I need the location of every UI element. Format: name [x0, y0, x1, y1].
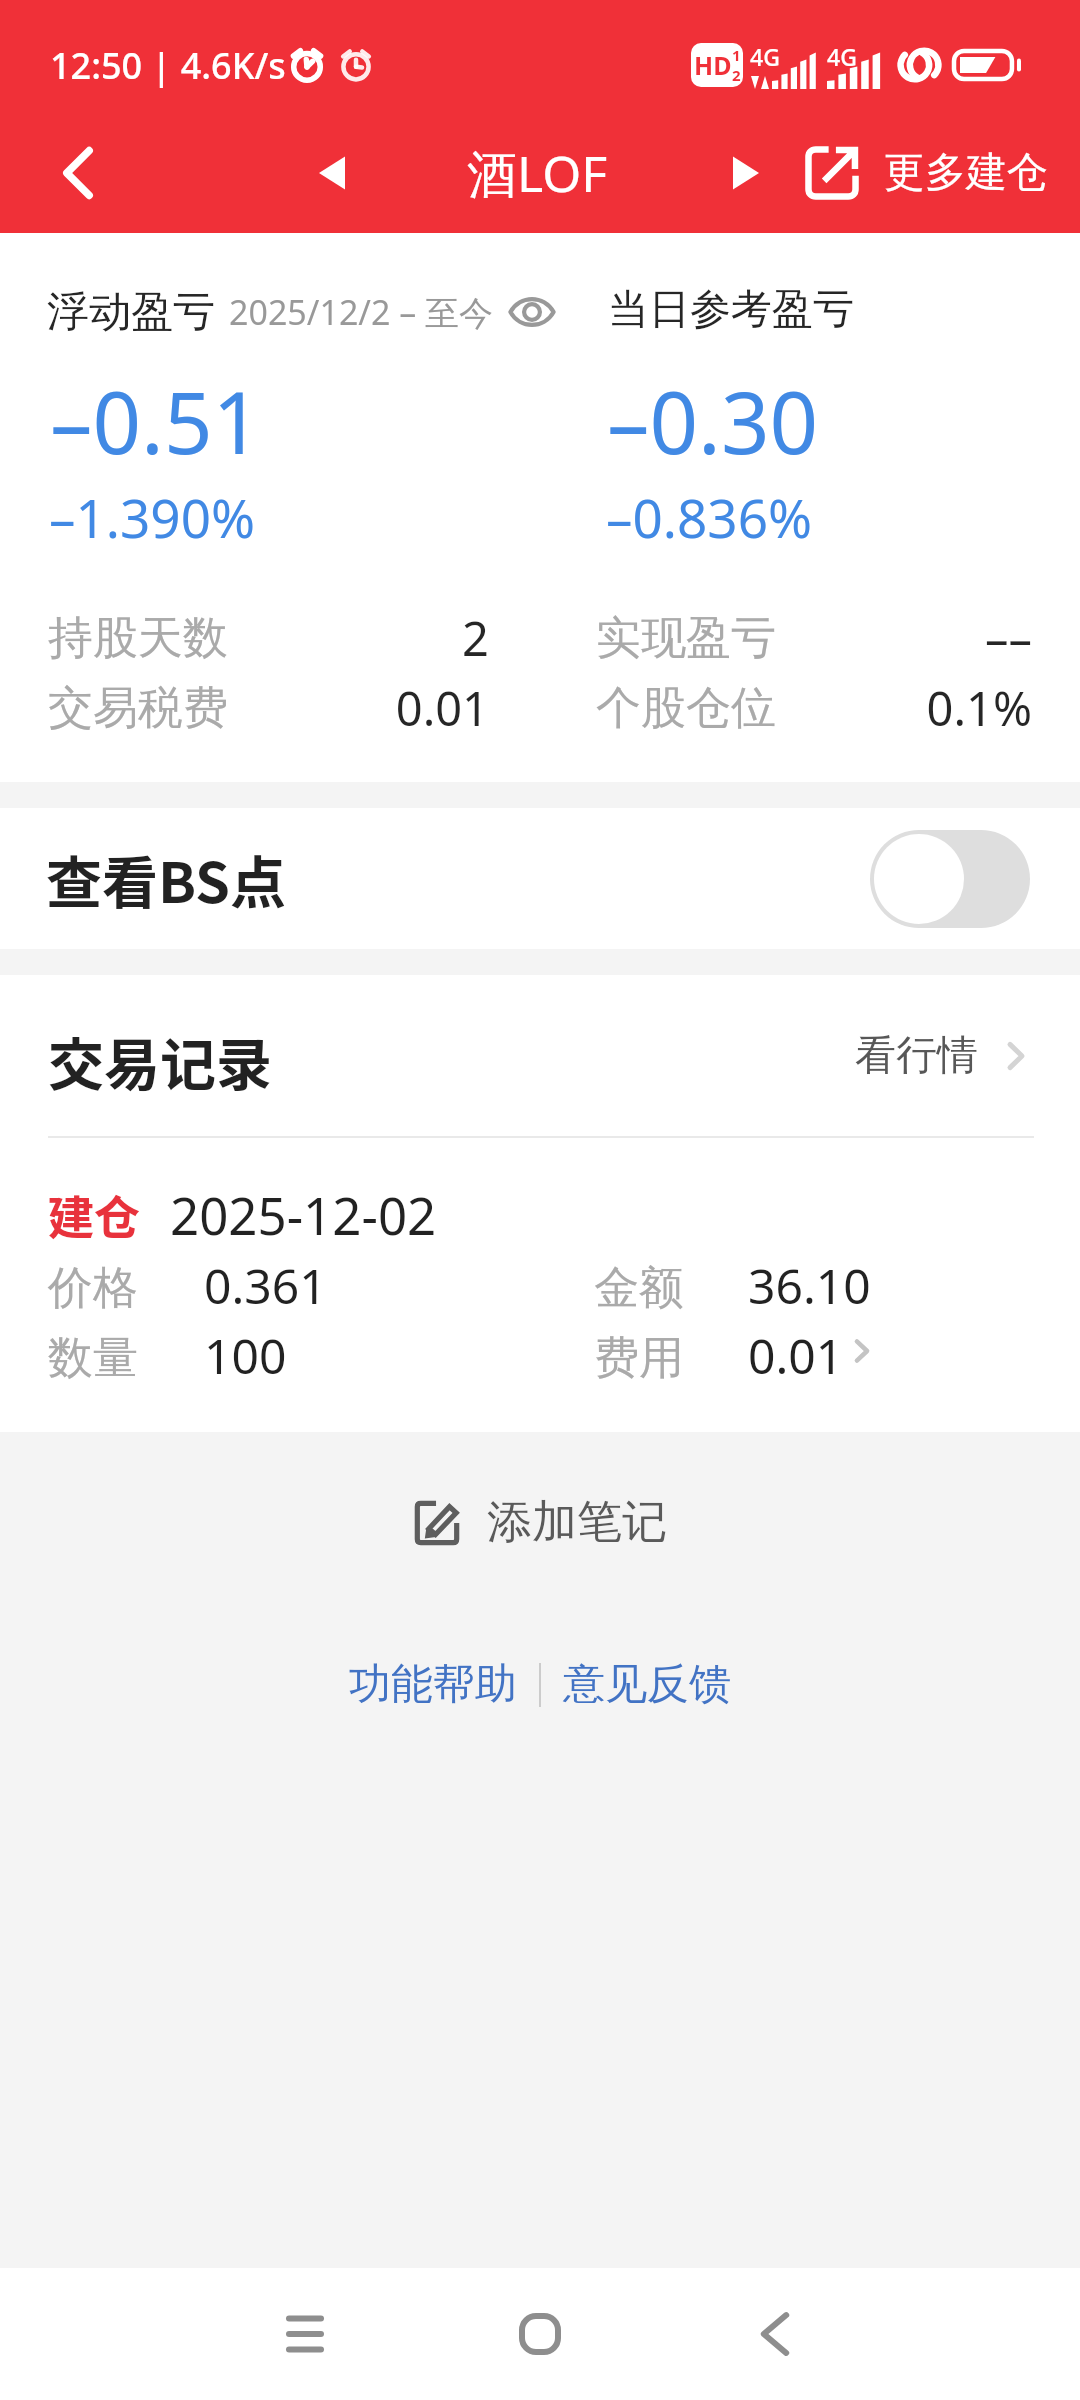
button[interactable]: Back — [720, 2279, 830, 2389]
staticText: 0.01 — [748, 1323, 844, 1388]
staticText: 100 — [204, 1323, 287, 1388]
staticText: –1.390% — [49, 481, 256, 553]
staticText: 2025-12-02 — [170, 1180, 437, 1249]
button[interactable]: 查看BS点 — [0, 808, 1080, 949]
staticText: 费用 — [594, 1330, 684, 1387]
staticText: HD — [694, 48, 732, 82]
staticText: 0.01 — [250, 676, 489, 740]
staticText: 1 — [732, 45, 741, 65]
staticText: 0.361 — [204, 1253, 327, 1318]
staticText: –0.836% — [606, 481, 813, 553]
staticText: 实现盈亏 — [596, 610, 776, 667]
staticText: 持股天数 — [48, 610, 228, 667]
staticText: 更多建仓 — [884, 147, 1048, 199]
button[interactable]: 看行情 — [855, 1022, 1036, 1090]
staticText: 意见反馈 — [563, 1658, 731, 1711]
staticText: 2025/12/2 – 至今 — [229, 289, 494, 335]
staticText: 数量 — [48, 1330, 138, 1387]
staticText: –0.30 — [607, 363, 819, 479]
staticText: 金额 — [594, 1260, 684, 1317]
button[interactable]: Recent apps — [250, 2279, 360, 2389]
staticText: 交易记录 — [48, 1020, 272, 1101]
staticText: 36.10 — [748, 1253, 871, 1318]
staticText: 个股仓位 — [596, 680, 776, 737]
button[interactable]: Toggle visibility — [504, 284, 560, 340]
button[interactable]: 功能帮助 — [327, 1646, 539, 1723]
staticText: 添加笔记 — [487, 1494, 667, 1551]
button[interactable]: 意见反馈 — [541, 1646, 753, 1723]
staticText: 2 — [250, 606, 489, 670]
staticText: –0.51 — [50, 363, 262, 479]
staticText: 价格 — [48, 1260, 138, 1317]
staticText: 4G — [827, 41, 857, 72]
button[interactable]: Back — [28, 112, 128, 233]
button[interactable]: Previous fund — [292, 112, 372, 233]
button[interactable]: 更多建仓 — [804, 112, 1048, 233]
staticText: 看行情 — [855, 1030, 978, 1082]
staticText: 浮动盈亏 — [47, 286, 215, 339]
button[interactable]: Next fund — [706, 112, 786, 233]
staticText: 4G — [750, 41, 780, 72]
staticText: 建仓 — [48, 1181, 140, 1248]
staticText: 2 — [732, 65, 741, 85]
staticText: 交易税费 — [48, 680, 228, 737]
staticText: 12:50 | 4.6K/s — [50, 41, 286, 90]
staticText: 查看BS点 — [46, 838, 287, 919]
staticText: 0.1% — [800, 676, 1032, 740]
staticText: –– — [800, 606, 1032, 670]
staticText: 当日参考盈亏 — [608, 284, 854, 336]
button[interactable]: Home — [485, 2279, 595, 2389]
button[interactable]: 建仓 — [0, 1136, 1080, 1426]
staticText: 功能帮助 — [349, 1658, 517, 1711]
staticText: 酒LOF — [467, 139, 608, 207]
button[interactable]: 添加笔记 — [389, 1482, 691, 1563]
